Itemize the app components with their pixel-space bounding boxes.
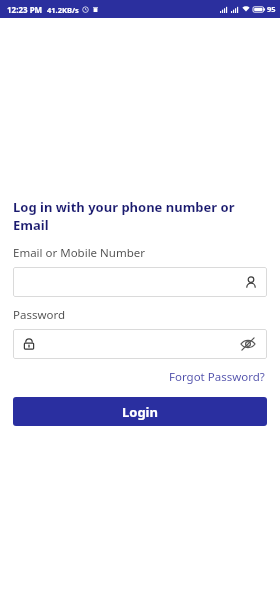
button[interactable]: Forgot Password? xyxy=(167,367,267,387)
staticText: Login xyxy=(122,403,158,421)
button[interactable]: Toggle password visibility xyxy=(238,334,258,354)
staticText: 41.2KB/s xyxy=(47,5,79,15)
staticText: Log in with your phone number or Email xyxy=(13,198,267,234)
button[interactable] xyxy=(13,267,267,297)
button[interactable]: Login xyxy=(13,397,267,426)
staticText: Forgot Password? xyxy=(169,369,265,385)
staticText: 12:23 PM xyxy=(7,4,43,15)
button[interactable]: Toggle password visibility xyxy=(13,329,267,359)
staticText: 95 xyxy=(267,4,276,14)
staticText: Email or Mobile Number xyxy=(13,245,145,261)
staticText: Password xyxy=(13,307,66,323)
